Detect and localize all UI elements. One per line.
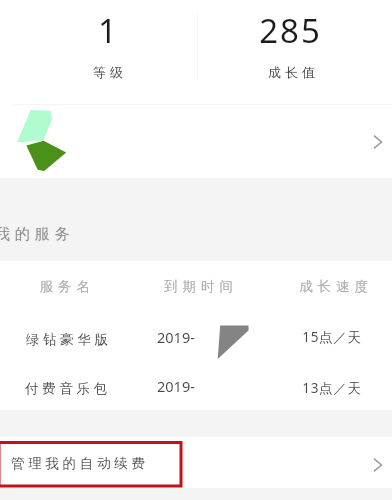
staticText: 2019- xyxy=(157,327,195,347)
staticText: 2019- xyxy=(157,376,195,396)
staticText: 服务名 xyxy=(39,278,95,295)
staticText: 13点／天 xyxy=(302,379,362,397)
staticText: 我的服务 xyxy=(0,225,75,244)
staticText: 等级 xyxy=(91,64,125,80)
other: More xyxy=(367,454,389,476)
other: More xyxy=(367,131,389,153)
staticText: 付费音乐包 xyxy=(23,380,109,397)
staticText: 285 xyxy=(259,8,322,53)
button[interactable]: 管理我的自动续费 xyxy=(0,437,392,488)
staticText: 绿钻豪华版 xyxy=(24,331,110,348)
staticText: 管理我的自动续费 xyxy=(11,455,149,472)
staticText: 成长速度 xyxy=(299,278,373,295)
staticText: 1 xyxy=(98,8,119,53)
button[interactable]: More xyxy=(0,105,392,178)
staticText: 到期时间 xyxy=(164,278,238,295)
staticText: 成长值 xyxy=(266,64,317,80)
staticText: 15点／天 xyxy=(302,328,362,346)
